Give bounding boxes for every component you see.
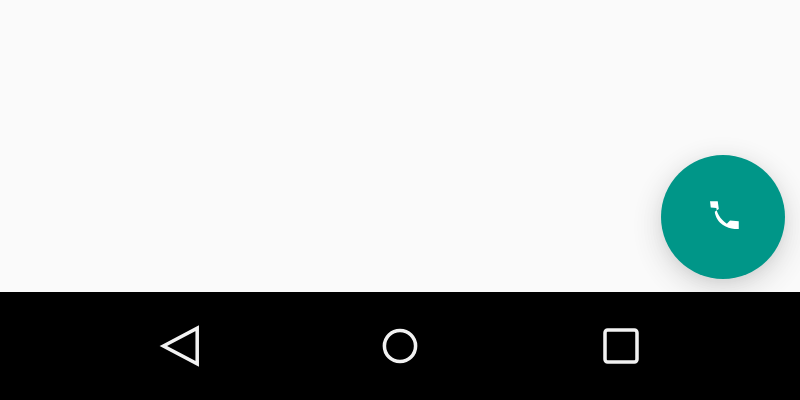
button[interactable]: Back <box>140 306 220 386</box>
button[interactable]: Home <box>360 306 440 386</box>
button[interactable]: Recent apps <box>581 306 661 386</box>
button[interactable]: Call <box>639 133 800 301</box>
